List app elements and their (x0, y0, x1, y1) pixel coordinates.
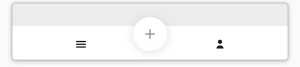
button[interactable]: Add (133, 17, 167, 51)
button[interactable]: Account (192, 25, 248, 61)
button[interactable]: Menu (53, 25, 109, 61)
